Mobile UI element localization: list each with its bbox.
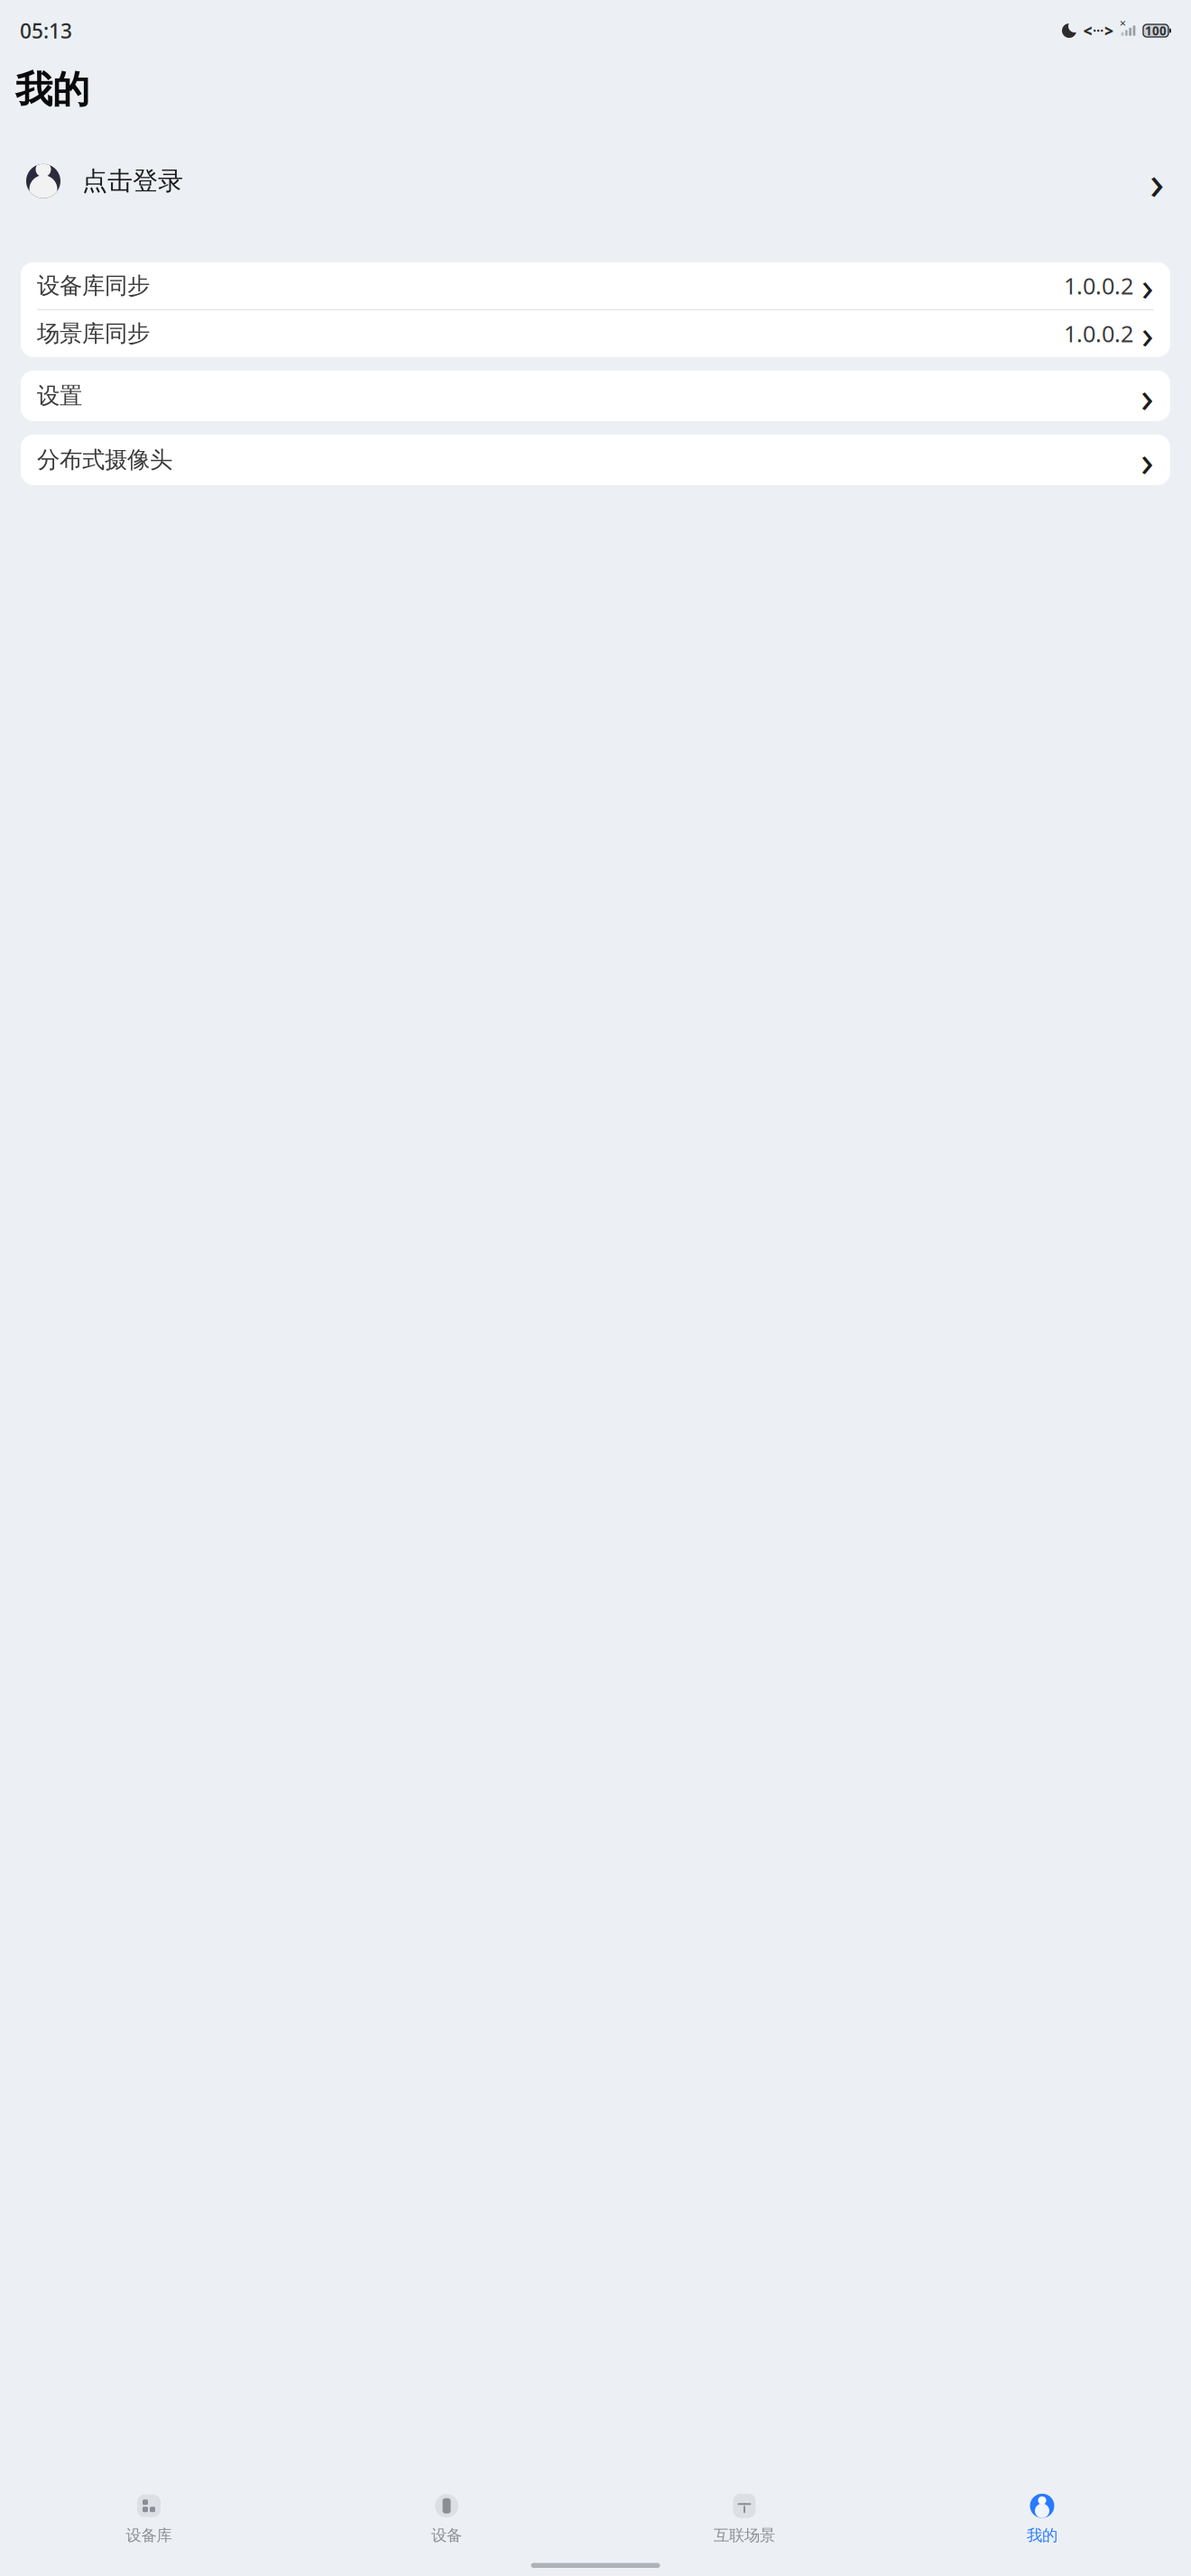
staticText: › — [1141, 259, 1154, 312]
button[interactable]: 我的 — [893, 2489, 1191, 2548]
staticText: 我的 — [15, 67, 89, 113]
staticText: 分布式摄像头 — [37, 446, 172, 474]
staticText: < — [1083, 20, 1092, 41]
button[interactable]: 设备库 — [0, 2489, 298, 2548]
button[interactable]: 设置 — [21, 371, 1170, 421]
staticText: 设备 — [431, 2526, 462, 2545]
staticText: 互联场景 — [714, 2526, 775, 2545]
staticText: ✕ — [1119, 19, 1126, 28]
button[interactable]: 设备库同步 — [21, 262, 1170, 309]
staticText: 1.0.0.2 — [1064, 318, 1133, 349]
staticText: 场景库同步 — [37, 319, 150, 348]
button[interactable]: 互联场景 — [595, 2489, 893, 2548]
button[interactable]: 点击登录 — [0, 122, 1191, 241]
button[interactable]: 分布式摄像头 — [21, 435, 1170, 485]
staticText: › — [1141, 307, 1154, 360]
button[interactable]: 场景库同步 — [21, 310, 1170, 357]
staticText: 1.0.0.2 — [1064, 270, 1133, 301]
button[interactable]: 设备 — [298, 2489, 595, 2548]
staticText: 05:13 — [20, 17, 72, 44]
staticText: 100 — [1145, 23, 1167, 39]
staticText: 设备库同步 — [37, 272, 150, 300]
staticText: › — [1140, 367, 1154, 424]
staticText: 点击登录 — [82, 166, 183, 197]
staticText: 设置 — [37, 382, 82, 410]
staticText: > — [1104, 20, 1113, 41]
staticText: 设备库 — [126, 2526, 172, 2545]
staticText: 我的 — [1027, 2526, 1057, 2545]
staticText: › — [1149, 149, 1165, 213]
staticText: › — [1140, 431, 1154, 489]
